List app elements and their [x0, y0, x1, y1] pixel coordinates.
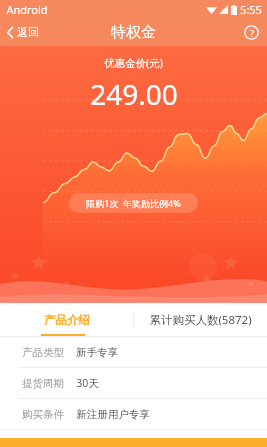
staticText: 产品介绍: [44, 313, 90, 327]
staticText: 购买条件: [22, 408, 64, 421]
staticText: 优惠金价(元): [104, 56, 163, 70]
staticText: 返回: [17, 25, 39, 39]
staticText: 30天: [76, 376, 99, 390]
button[interactable]: 产品介绍: [0, 303, 133, 337]
button[interactable]: 帮助: [244, 25, 259, 40]
staticText: 249.00: [90, 75, 178, 113]
staticText: 5:55: [240, 2, 262, 17]
staticText: Android: [6, 2, 48, 17]
staticText: 特权金: [111, 23, 156, 42]
button[interactable]: 返回: [0, 21, 47, 43]
staticText: 新手专享: [76, 346, 118, 359]
staticText: 累计购买人数(5872): [149, 312, 252, 328]
button[interactable]: 累计购买人数(5872): [134, 303, 267, 337]
button[interactable]: 购买条件: [0, 399, 267, 429]
staticText: 提货周期: [22, 377, 64, 390]
staticText: 产品类型: [22, 346, 64, 359]
button[interactable]: 产品类型: [0, 337, 267, 367]
staticText: 限购1次 年奖励比例4%: [86, 197, 181, 209]
staticText: ?: [250, 27, 254, 39]
staticText: 新注册用户专享: [76, 408, 150, 421]
button[interactable]: 限购1次 年奖励比例4%: [69, 193, 198, 213]
button[interactable]: 提货周期: [0, 368, 267, 398]
